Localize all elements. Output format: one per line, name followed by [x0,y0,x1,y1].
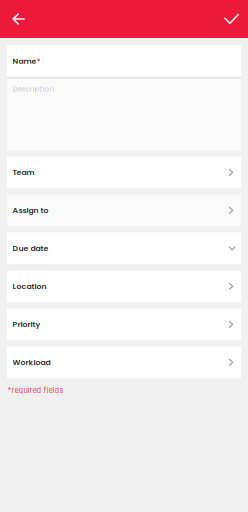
staticText: Team [12,167,34,178]
staticText: Assign to [12,205,48,216]
button[interactable]: Location [0,270,248,302]
staticText: Due date [12,243,48,254]
staticText: Priority [12,319,40,330]
staticText: Workload [12,357,50,368]
button[interactable]: Assign to [0,194,248,226]
button[interactable]: Name [7,45,241,77]
button[interactable]: Save [217,1,248,37]
staticText: *required fields [8,386,64,395]
staticText: Name [12,56,36,66]
button[interactable]: Back [0,0,33,38]
staticText: Description [12,84,54,94]
button[interactable]: Due date [0,232,248,264]
staticText: * [37,56,41,66]
button[interactable]: Team [0,156,248,188]
staticText: Location [12,281,46,292]
button[interactable]: Priority [0,308,248,340]
button[interactable]: Workload [0,346,248,378]
